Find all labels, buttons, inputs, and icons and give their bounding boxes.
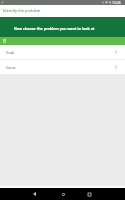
staticText: 13:46 [112, 0, 121, 5]
staticText: B [3, 38, 7, 45]
staticText: Grow [6, 65, 16, 70]
button[interactable]: Home [56, 188, 70, 200]
button[interactable]: Grow [0, 60, 125, 74]
staticText: Scab [6, 50, 15, 55]
button[interactable]: Back [27, 188, 41, 200]
button[interactable]: B [0, 37, 125, 45]
button[interactable]: Scab [0, 45, 125, 59]
button[interactable]: Recent apps [82, 188, 96, 200]
staticText: Identify the problem [3, 8, 41, 13]
staticText: Now choose the problem you want to look … [14, 26, 95, 31]
